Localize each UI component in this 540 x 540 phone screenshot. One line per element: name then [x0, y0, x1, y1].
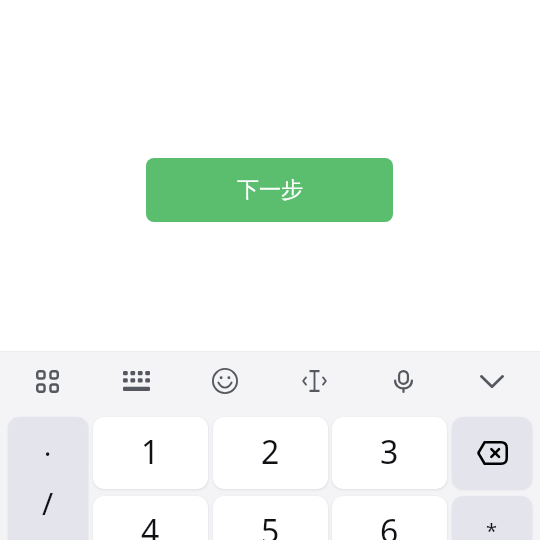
button[interactable]: 6 [332, 496, 447, 540]
button[interactable]: Voice input [378, 356, 428, 406]
staticText: 2 [261, 430, 280, 474]
button[interactable]: Hide keyboard [467, 356, 517, 406]
button[interactable]: Emoji [200, 356, 250, 406]
staticText: / [42, 483, 54, 524]
button[interactable]: 2 [213, 417, 328, 489]
button[interactable]: Move cursor [289, 356, 339, 406]
staticText: * [486, 517, 498, 540]
button[interactable]: Backspace [452, 417, 532, 489]
staticText: 4 [141, 509, 160, 540]
staticText: 6 [380, 509, 399, 540]
button[interactable]: 3 [332, 417, 447, 489]
button[interactable]: 1 [93, 417, 208, 489]
button[interactable]: Keyboard [111, 356, 161, 406]
button[interactable]: 5 [213, 496, 328, 540]
button[interactable]: Keyboard layouts [22, 356, 72, 406]
staticText: 下一步 [237, 176, 303, 204]
staticText: 1 [141, 430, 160, 474]
button[interactable]: Asterisk [452, 496, 532, 540]
button[interactable]: · [8, 417, 88, 540]
staticText: · [44, 435, 52, 472]
button[interactable]: 4 [93, 496, 208, 540]
staticText: 3 [380, 430, 399, 474]
staticText: 5 [261, 509, 280, 540]
button[interactable]: 下一步 [146, 158, 393, 222]
